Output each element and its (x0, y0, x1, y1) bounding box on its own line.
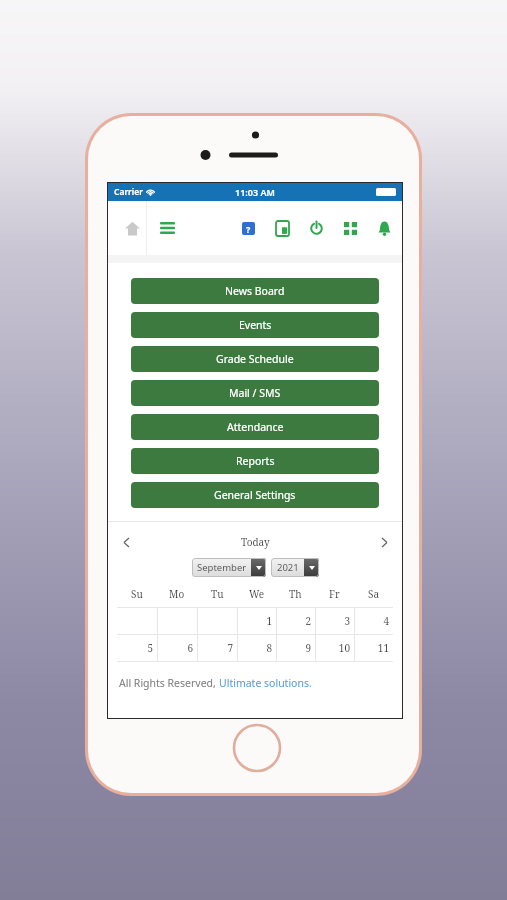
staticText: Attendance (227, 420, 284, 434)
staticText: September (197, 561, 247, 574)
button[interactable]: Mail / SMS (131, 380, 379, 406)
button[interactable]: 11 (355, 635, 393, 661)
staticText: 5 (147, 641, 153, 655)
staticText: Reports (236, 454, 275, 468)
button[interactable]: Grade Schedule (131, 346, 379, 372)
button[interactable]: Help (234, 214, 262, 242)
button[interactable]: September (192, 558, 266, 577)
button[interactable]: 8 (238, 635, 276, 661)
button[interactable]: Logout (302, 214, 330, 242)
staticText: 3 (344, 614, 350, 628)
button[interactable]: Ultimate solutions. (219, 676, 312, 690)
staticText: General Settings (214, 488, 296, 502)
staticText: All Rights Reserved, (119, 676, 219, 690)
button[interactable]: 2021 (271, 558, 319, 577)
button[interactable]: 7 (198, 635, 237, 661)
staticText: Th (289, 587, 302, 601)
staticText: Sa (368, 587, 380, 601)
staticText: News Board (225, 284, 285, 298)
staticText: Today (241, 535, 270, 549)
staticText: 9 (305, 641, 311, 655)
button[interactable]: Notes (268, 214, 296, 242)
staticText: Tu (211, 587, 224, 601)
button[interactable]: Menu (152, 213, 182, 243)
button[interactable]: General Settings (131, 482, 379, 508)
button[interactable]: Apps (336, 214, 364, 242)
button[interactable]: Notifications (370, 214, 398, 242)
staticText: 8 (266, 641, 272, 655)
staticText: Mail / SMS (229, 386, 281, 400)
staticText: 11 (377, 641, 389, 655)
staticText: 11:03 AM (235, 186, 275, 198)
staticText: Carrier (114, 186, 143, 198)
staticText: 6 (187, 641, 193, 655)
button[interactable]: 5 (117, 635, 157, 661)
button[interactable]: Previous month (118, 534, 134, 550)
staticText: 10 (338, 641, 350, 655)
staticText: 1 (266, 614, 272, 628)
button[interactable]: Next month (376, 534, 392, 550)
button[interactable]: 3 (316, 608, 354, 634)
staticText: Events (239, 318, 272, 332)
button[interactable]: Attendance (131, 414, 379, 440)
staticText: Su (131, 587, 143, 601)
staticText: 4 (383, 614, 389, 628)
staticText: 2 (305, 614, 311, 628)
button[interactable]: 1 (238, 608, 276, 634)
button[interactable]: 6 (158, 635, 197, 661)
button[interactable]: News Board (131, 278, 379, 304)
button[interactable]: Events (131, 312, 379, 338)
button[interactable]: 4 (355, 608, 393, 634)
staticText: 2021 (277, 561, 299, 574)
staticText: Fr (329, 587, 340, 601)
staticText: Mo (169, 587, 185, 601)
button[interactable]: 10 (316, 635, 354, 661)
button[interactable]: Reports (131, 448, 379, 474)
staticText: ? (246, 223, 251, 235)
staticText: We (249, 587, 265, 601)
staticText: 7 (227, 641, 233, 655)
button[interactable]: 9 (277, 635, 315, 661)
button[interactable]: 2 (277, 608, 315, 634)
button[interactable]: Home (117, 213, 147, 243)
staticText: Grade Schedule (216, 352, 294, 366)
